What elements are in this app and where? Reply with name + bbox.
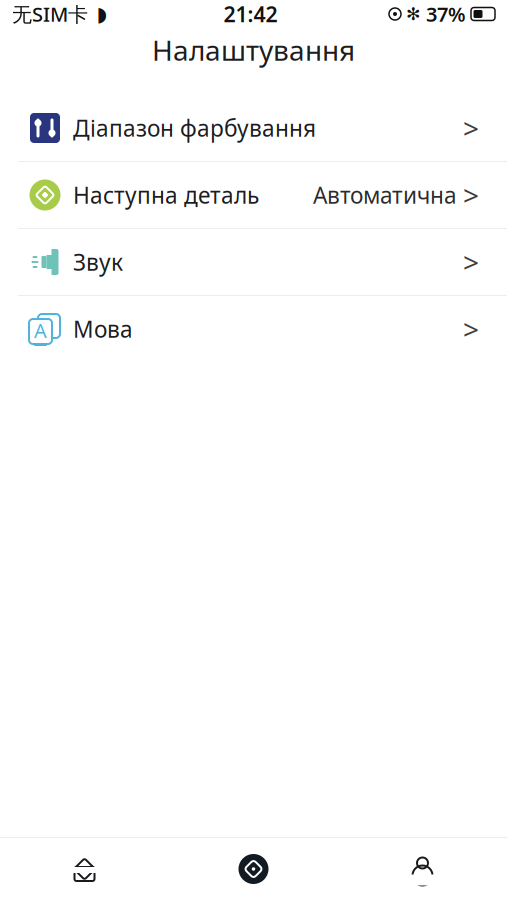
staticText: 21:42 (223, 0, 277, 28)
button[interactable]: A (0, 296, 507, 362)
staticText: > (463, 109, 479, 147)
staticText: 37% (426, 1, 466, 27)
button[interactable]: Наступна деталь (0, 162, 507, 228)
staticText: > (463, 243, 479, 281)
button[interactable]: Діапазон фарбування (0, 95, 507, 161)
staticText: Мова (73, 314, 133, 344)
staticText: Налаштування (152, 31, 355, 69)
staticText: Автоматична (313, 180, 457, 210)
button[interactable]: Profile (338, 838, 507, 900)
staticText: Діапазон фарбування (73, 113, 316, 143)
staticText: Звук (73, 247, 123, 277)
staticText: 无SIM卡 (12, 1, 88, 27)
staticText: ◗ (96, 3, 107, 25)
button[interactable]: Home (0, 838, 169, 900)
staticText: A (34, 317, 47, 344)
button[interactable]: Settings (169, 838, 338, 900)
staticText: > (463, 176, 479, 214)
staticText: > (463, 310, 479, 348)
staticText: ✻ (406, 4, 421, 24)
button[interactable]: Звук (0, 229, 507, 295)
staticText: Наступна деталь (73, 180, 259, 210)
